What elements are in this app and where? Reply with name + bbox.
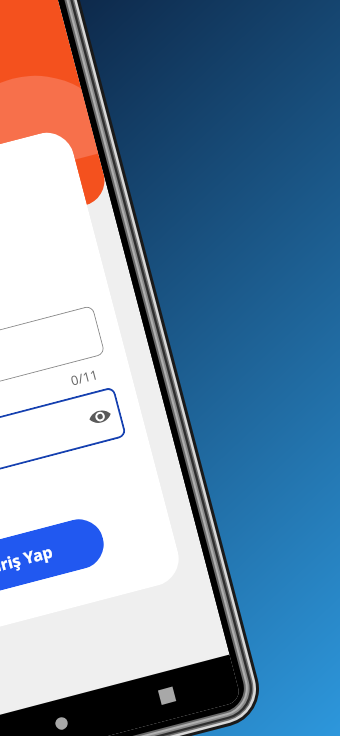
staticText: 0/11 bbox=[69, 365, 100, 389]
button[interactable]: Giriş Yap bbox=[0, 514, 109, 606]
staticText: Giriş Yap bbox=[0, 540, 55, 579]
button[interactable] bbox=[0, 305, 105, 423]
button[interactable]: Show password bbox=[0, 386, 127, 505]
button[interactable]: Show password bbox=[85, 402, 115, 431]
